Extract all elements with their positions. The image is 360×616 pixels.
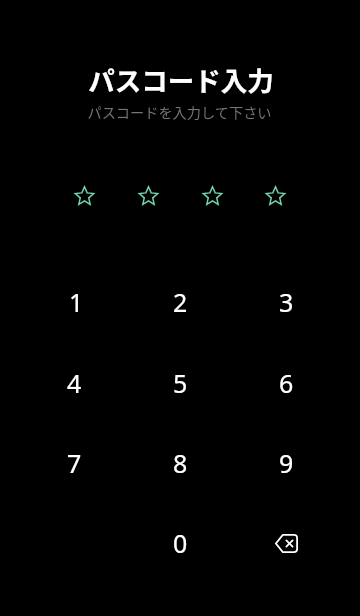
button[interactable]: 9 [238, 425, 334, 501]
staticText: パスコードを入力して下さい [87, 102, 272, 123]
button[interactable]: 3 [238, 264, 334, 340]
staticText: 2 [173, 285, 188, 319]
button[interactable]: Delete [238, 505, 334, 581]
button[interactable]: 2 [132, 264, 228, 340]
staticText: 5 [173, 366, 188, 400]
button[interactable]: 0 [132, 505, 228, 581]
staticText: 4 [67, 366, 82, 400]
button[interactable]: 1 [26, 264, 122, 340]
staticText: 8 [173, 446, 188, 480]
staticText: 3 [279, 285, 294, 319]
button[interactable]: 4 [26, 345, 122, 421]
button[interactable]: 5 [132, 345, 228, 421]
button[interactable]: 8 [132, 425, 228, 501]
staticText: 0 [173, 526, 188, 560]
staticText: 1 [69, 285, 84, 319]
button[interactable]: 6 [238, 345, 334, 421]
staticText: 9 [279, 446, 294, 480]
staticText: 7 [67, 446, 82, 480]
staticText: 6 [279, 366, 294, 400]
button[interactable]: 7 [26, 425, 122, 501]
staticText: パスコード入力 [88, 60, 274, 98]
